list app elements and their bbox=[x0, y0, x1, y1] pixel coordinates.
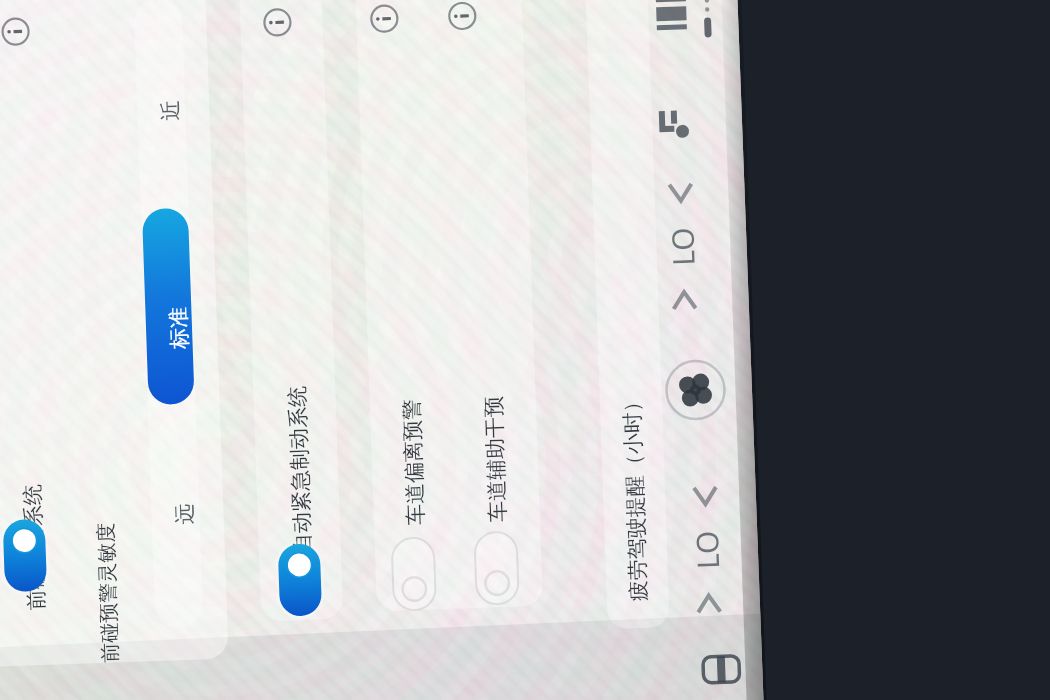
button[interactable]: Driver assistance settings screen bbox=[0, 0, 1050, 700]
